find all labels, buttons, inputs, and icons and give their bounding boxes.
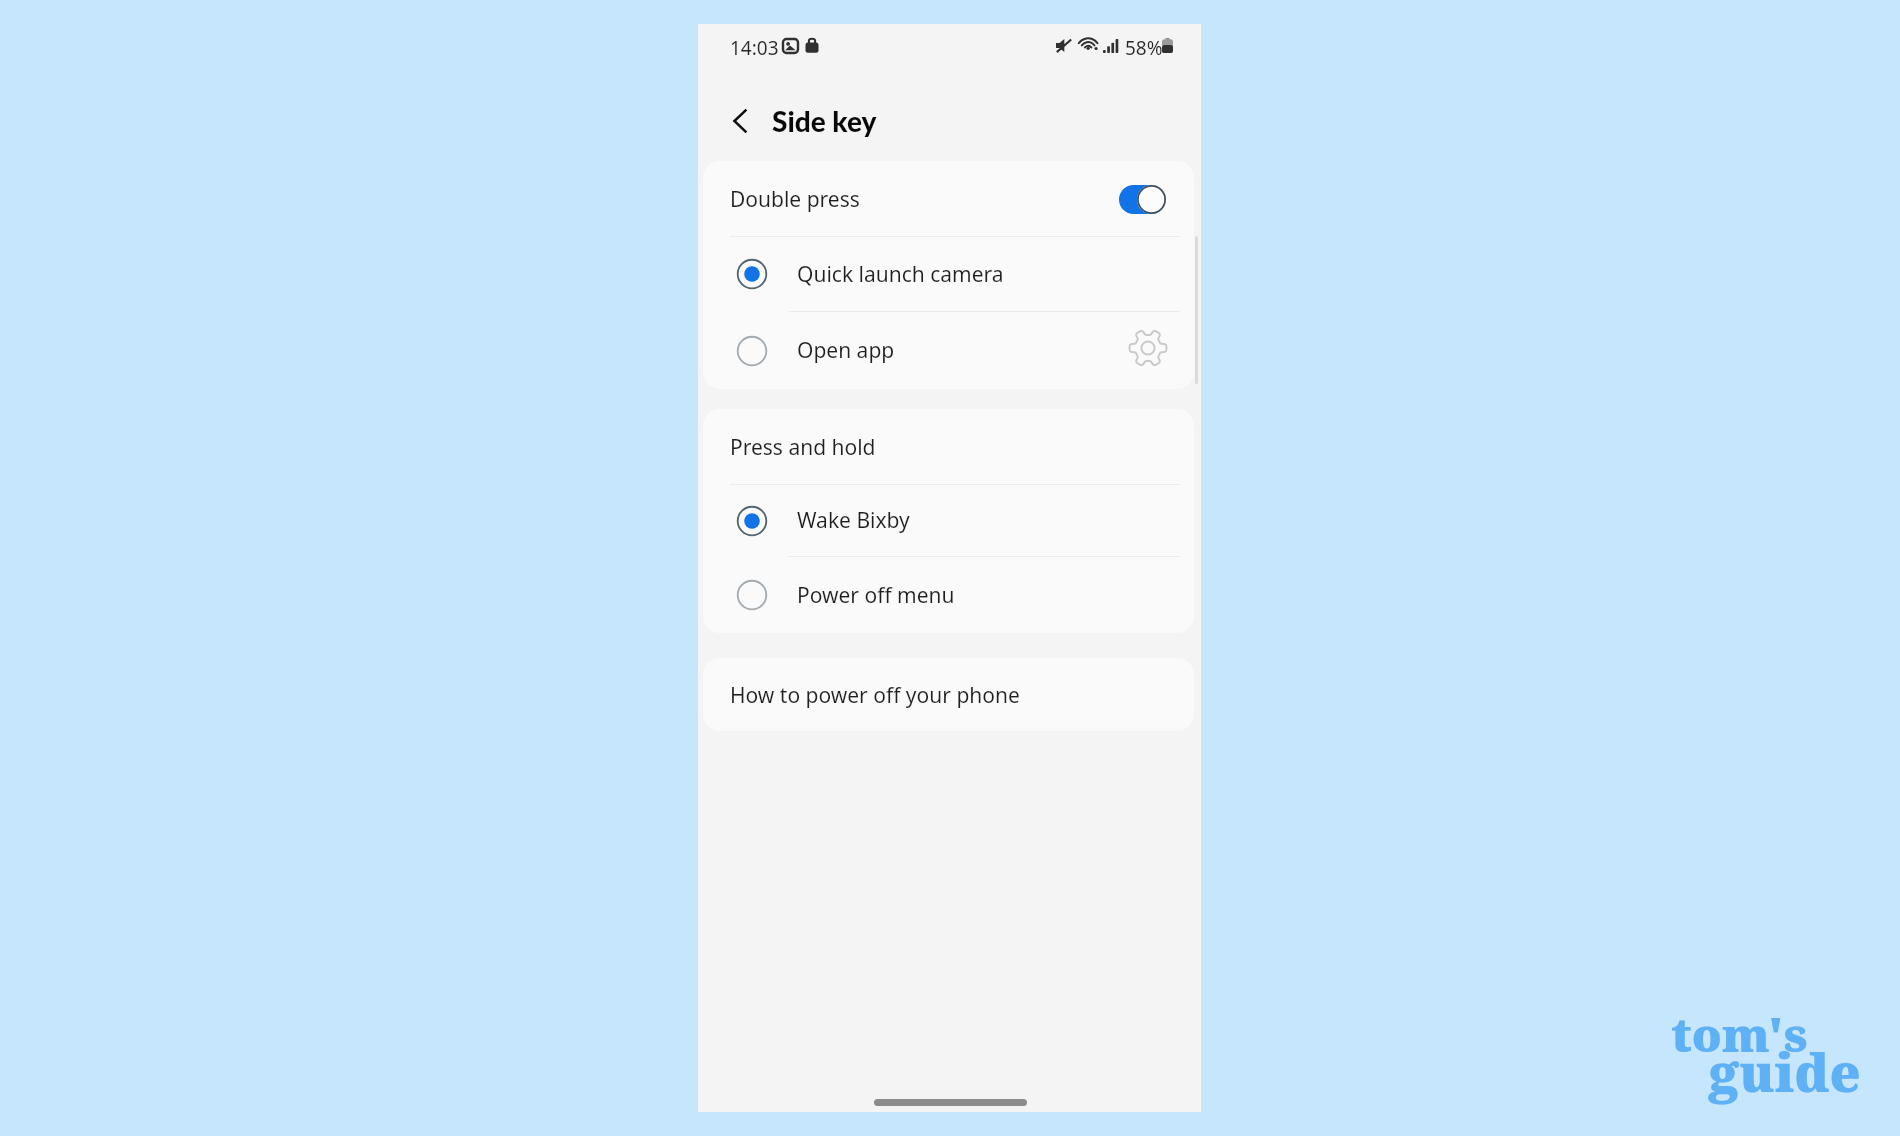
staticText: 58%: [1125, 35, 1163, 61]
button[interactable]: Wake Bixby: [703, 485, 1194, 556]
staticText: Power off menu: [797, 581, 955, 610]
staticText: Wake Bixby: [797, 506, 910, 535]
staticText: tom's: [1671, 1002, 1808, 1066]
button[interactable]: Double press: [703, 161, 1194, 236]
button[interactable]: How to power off your phone: [703, 658, 1194, 731]
staticText: Quick launch camera: [797, 260, 1004, 289]
staticText: guide: [1709, 1036, 1861, 1107]
staticText: 14:03: [730, 35, 779, 61]
button[interactable]: Quick launch camera: [703, 237, 1194, 311]
button[interactable]: Power off menu: [703, 557, 1194, 633]
staticText: How to power off your phone: [730, 681, 1020, 710]
staticText: Double press: [730, 185, 860, 214]
staticText: Open app: [797, 336, 895, 365]
button[interactable]: Double press toggle, on: [1119, 185, 1166, 214]
button[interactable]: Open app settings: [1126, 309, 1170, 386]
button[interactable]: Home: [848, 1085, 1053, 1119]
staticText: Press and hold: [730, 433, 876, 462]
staticText: Side key: [772, 104, 877, 138]
button[interactable]: Open app: [703, 312, 1194, 389]
button[interactable]: Back: [719, 99, 763, 143]
